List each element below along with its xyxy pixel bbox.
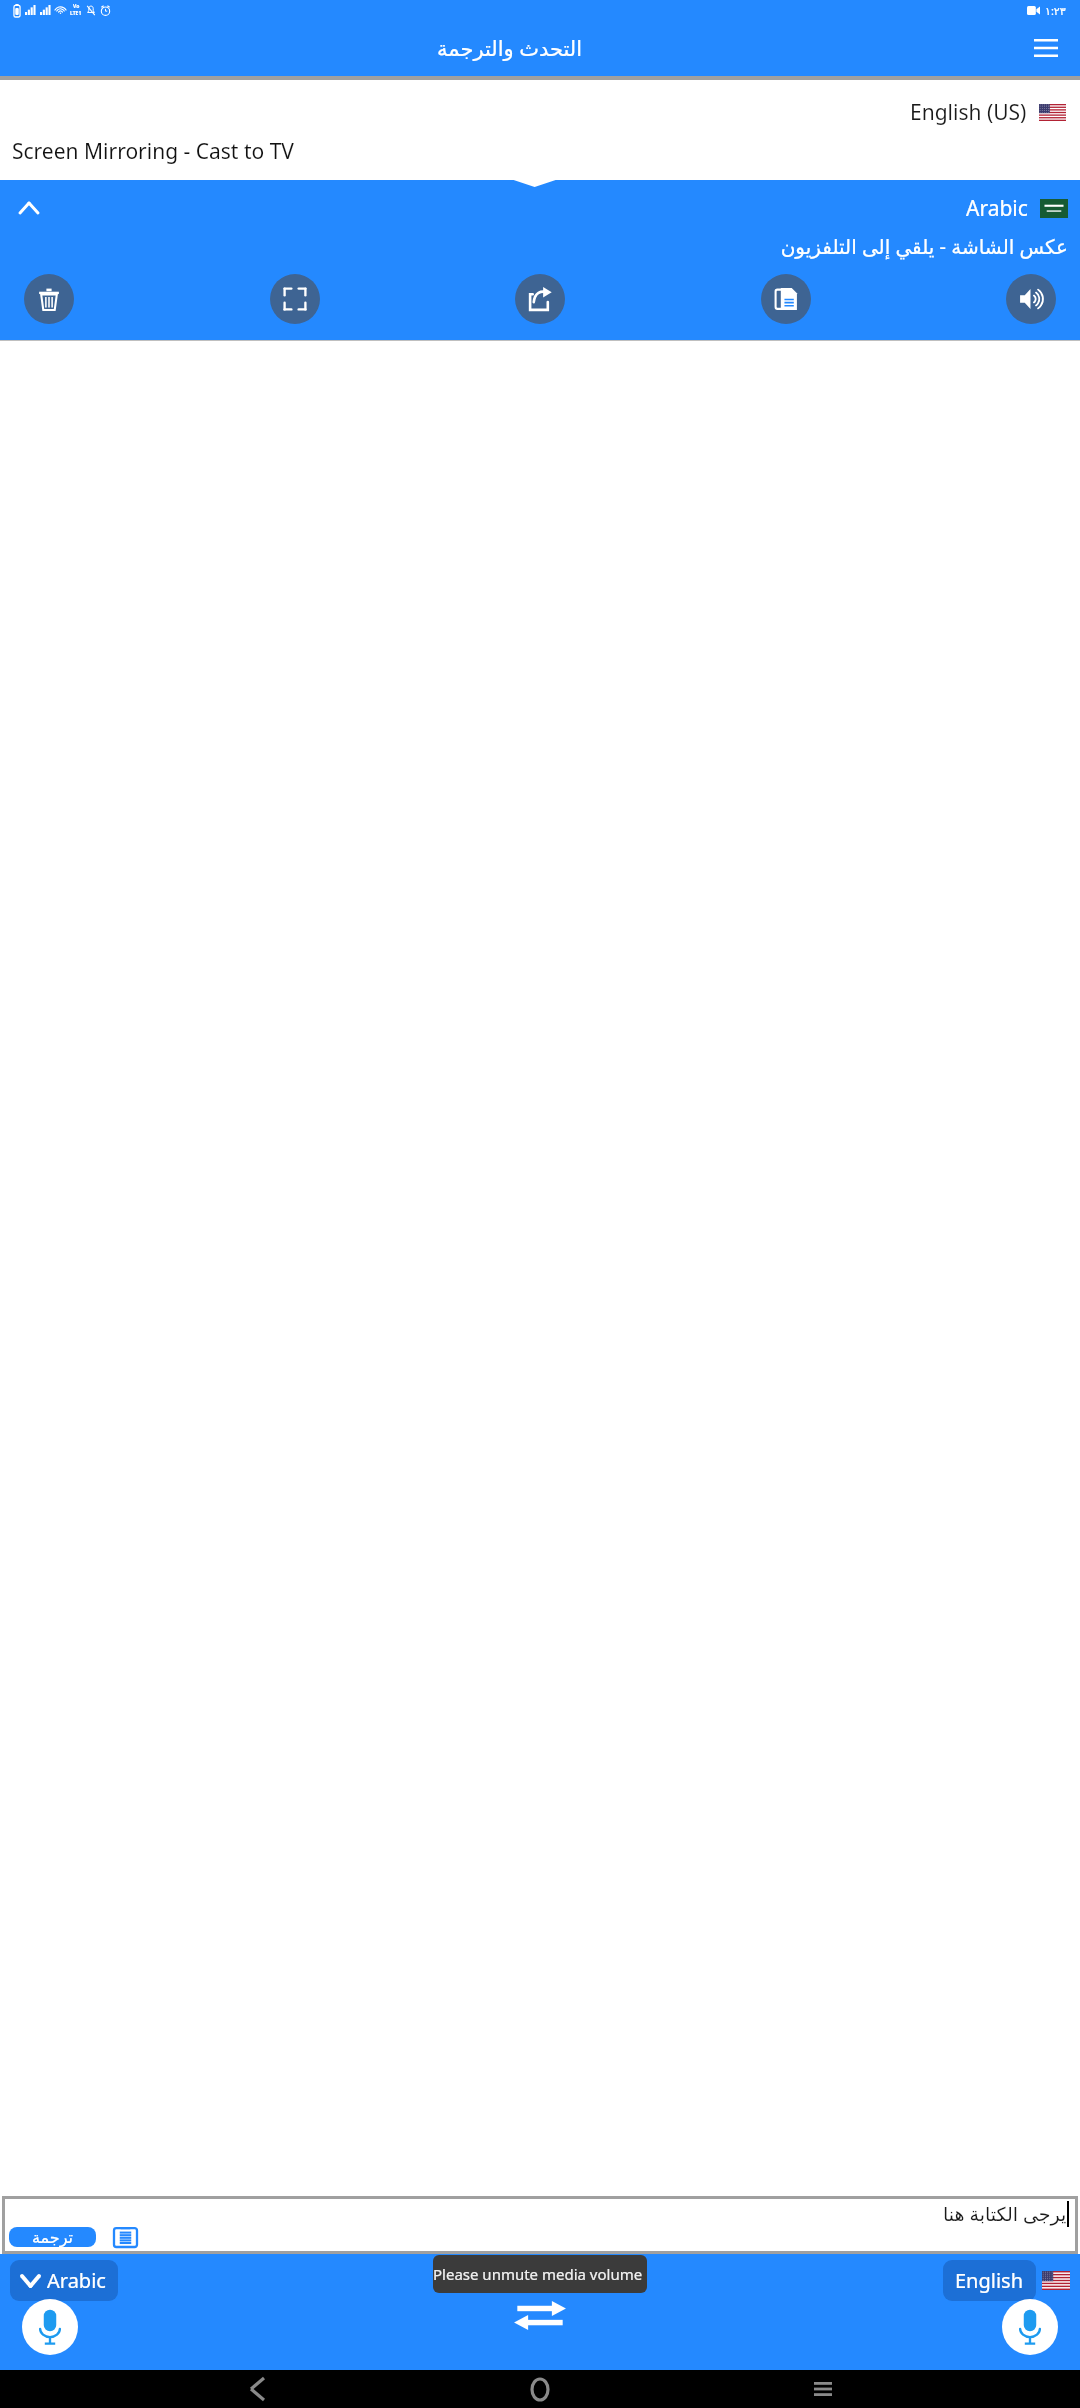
staticText: Vo: [73, 3, 80, 10]
staticText: Screen Mirroring - Cast to TV: [12, 137, 294, 166]
button[interactable]: English (US): [0, 98, 1080, 127]
staticText: Arabic: [966, 194, 1028, 223]
staticText: التحدث والترجمة: [437, 34, 583, 63]
staticText: ترجمة: [32, 2228, 73, 2247]
staticText: English (US): [910, 98, 1027, 127]
staticText: English: [955, 2267, 1024, 2294]
button[interactable]: ترجمة: [9, 2227, 96, 2247]
button[interactable]: Microphone: [22, 2299, 78, 2355]
button[interactable]: Delete: [24, 274, 74, 324]
staticText: يرجى الكتابة هنا: [943, 2201, 1067, 2227]
button[interactable]: Paste: [108, 2227, 142, 2247]
button[interactable]: Microphone: [1002, 2299, 1058, 2355]
button[interactable]: Recents: [797, 2370, 849, 2408]
button[interactable]: Collapse: [12, 191, 46, 225]
button[interactable]: Menu: [1022, 24, 1070, 72]
button[interactable]: Arabic: [10, 2260, 118, 2301]
staticText: عكس الشاشة - يلقي إلى التلفزيون: [0, 233, 1068, 260]
staticText: LTE1: [70, 10, 82, 17]
button[interactable]: Speak: [1006, 274, 1056, 324]
staticText: Arabic: [47, 2267, 106, 2294]
button[interactable]: Home: [514, 2370, 566, 2408]
staticText: ١:٢٣: [1045, 3, 1066, 18]
button[interactable]: Copy: [761, 274, 811, 324]
staticText: Please unmute media volume: [433, 2264, 643, 2284]
button[interactable]: Back: [231, 2370, 283, 2408]
button[interactable]: English: [943, 2260, 1036, 2301]
button[interactable]: Share: [515, 274, 565, 324]
button[interactable]: Fullscreen: [270, 274, 320, 324]
